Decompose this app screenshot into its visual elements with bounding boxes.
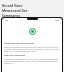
staticText: Summarize your voice memos [4,42,34,45]
staticText: Share the transcripts [4,54,25,57]
staticText: Record a voice memo and you instantly ge… [4,46,60,52]
button[interactable]: Record [29,28,36,35]
staticText: Record Voice Memos and Get Summaries [2,3,28,18]
staticText: Export full transcripts straight to note… [4,58,60,64]
